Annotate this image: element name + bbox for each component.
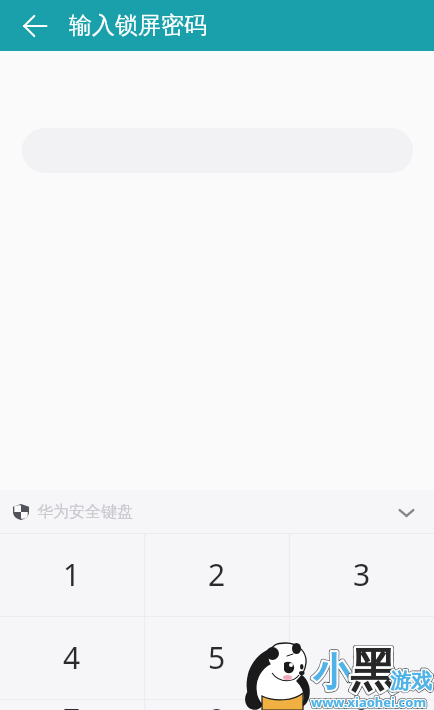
staticText: 8 — [208, 699, 226, 710]
staticText: www.xiaohei.com — [311, 693, 427, 710]
button[interactable]: Collapse keyboard — [389, 495, 423, 529]
button[interactable]: 7 — [0, 699, 144, 710]
button[interactable]: Back — [0, 0, 69, 51]
button[interactable]: 2 — [144, 533, 289, 616]
button[interactable]: 1 — [0, 533, 144, 616]
staticText: 3 — [353, 554, 371, 595]
staticText: 4 — [63, 637, 81, 678]
staticText: 游戏 — [390, 668, 432, 694]
button[interactable]: 8 — [144, 699, 289, 710]
staticText: 小 — [313, 648, 351, 696]
staticText: 5 — [208, 637, 226, 678]
button[interactable]: 6 — [289, 616, 434, 699]
button[interactable]: 5 — [144, 616, 289, 699]
staticText: www.xiaohei.com — [311, 693, 427, 710]
staticText: 6 — [353, 637, 371, 678]
button[interactable]: 4 — [0, 616, 144, 699]
staticText: 游戏 — [390, 668, 432, 694]
staticText: 7 — [63, 699, 81, 710]
staticText: 输入锁屏密码 — [69, 11, 207, 40]
staticText: 黑 — [350, 642, 396, 700]
staticText: 1 — [63, 554, 81, 595]
button[interactable]: 3 — [289, 533, 434, 616]
staticText: 黑 — [350, 642, 396, 700]
staticText: 游戏 — [390, 668, 432, 694]
staticText: 黑 — [350, 642, 396, 700]
staticText: 小 — [313, 648, 351, 696]
staticText: 小 — [313, 648, 351, 696]
staticText: 华为安全键盘 — [37, 502, 133, 522]
staticText: 9 — [353, 699, 371, 710]
staticText: 2 — [208, 554, 226, 595]
button[interactable]: 9 — [289, 699, 434, 710]
staticText: www.xiaohei.com — [311, 693, 427, 710]
